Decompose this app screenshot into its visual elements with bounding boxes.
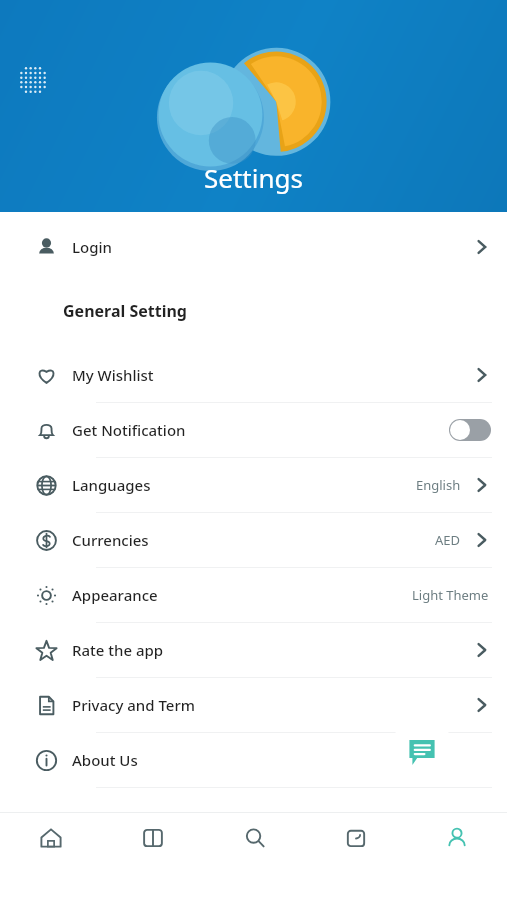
button[interactable]: Categories [102,826,204,872]
button[interactable]: Chat support [389,719,455,785]
button[interactable]: Get Notification [0,403,507,458]
button[interactable]: Currencies [0,513,507,568]
button[interactable]: Profile [406,826,507,872]
staticText: Light Theme [412,586,489,604]
staticText: AED [435,531,461,549]
staticText: Privacy and Term [72,695,195,715]
button[interactable]: Privacy and Term [0,678,507,733]
staticText: My Wishlist [72,365,154,385]
button[interactable]: About Us [0,733,507,788]
button[interactable]: Search [204,826,305,872]
staticText: English [416,476,461,494]
staticText: Rate the app [72,640,164,660]
button[interactable] [449,419,491,441]
button[interactable]: My Wishlist [0,348,507,403]
button[interactable]: Home [0,826,102,872]
staticText: Languages [72,475,151,495]
button[interactable]: Login [0,220,507,274]
button[interactable]: Rate the app [0,623,507,678]
staticText: General Setting [63,300,187,322]
button[interactable]: Cart [305,826,406,872]
staticText: Get Notification [72,420,186,440]
staticText: About Us [72,750,138,770]
staticText: Currencies [72,530,149,550]
staticText: Appearance [72,585,158,605]
button[interactable]: Appearance [0,568,507,623]
staticText: Settings [204,160,303,195]
staticText: Login [72,237,112,257]
button[interactable]: Languages [0,458,507,513]
